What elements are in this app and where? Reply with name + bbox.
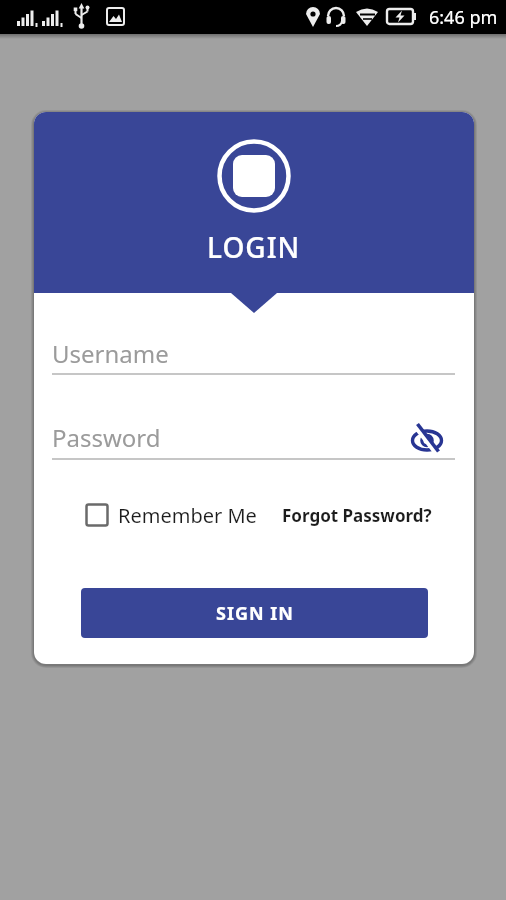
staticText: Username bbox=[52, 337, 169, 370]
staticText: LOGIN bbox=[207, 228, 301, 266]
staticText: Password bbox=[52, 421, 161, 454]
button[interactable]: Remember Me bbox=[85, 501, 257, 529]
staticText: SIGN IN bbox=[216, 601, 294, 626]
button[interactable] bbox=[407, 423, 447, 457]
staticText: Forgot Password? bbox=[282, 504, 432, 527]
button[interactable]: SIGN IN bbox=[81, 588, 428, 638]
button[interactable]: Username bbox=[52, 332, 455, 374]
button[interactable]: Password bbox=[52, 416, 455, 458]
staticText: Remember Me bbox=[118, 502, 257, 529]
button[interactable]: Forgot Password? bbox=[282, 501, 432, 529]
staticText: 6:46 pm bbox=[429, 5, 498, 30]
